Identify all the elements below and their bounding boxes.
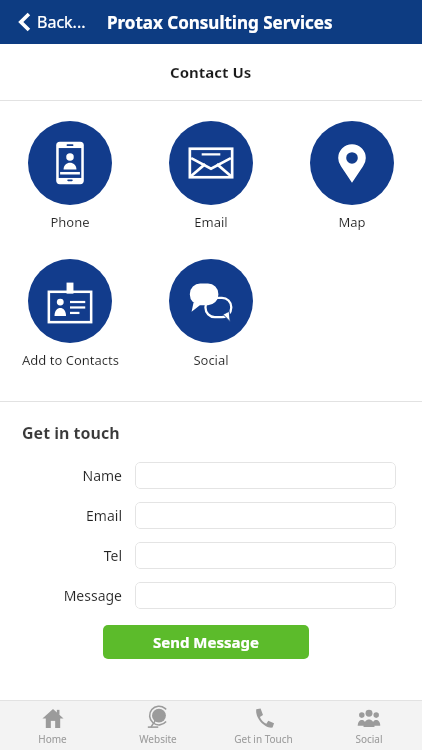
- button[interactable]: [135, 542, 396, 569]
- staticText: Phone: [50, 213, 90, 231]
- button[interactable]: Email: [140, 121, 281, 231]
- button[interactable]: Send Message: [103, 625, 309, 659]
- button[interactable]: [135, 502, 396, 529]
- button[interactable]: Add to Contacts: [0, 259, 140, 369]
- button[interactable]: Phone: [0, 121, 140, 231]
- staticText: Message: [63, 586, 122, 605]
- button[interactable]: Social: [140, 259, 281, 369]
- staticText: Get in touch: [22, 422, 120, 444]
- staticText: Social: [193, 351, 229, 369]
- button[interactable]: [135, 462, 396, 489]
- button[interactable]: Home: [0, 701, 105, 746]
- button[interactable]: Social: [316, 701, 422, 746]
- staticText: Contact Us: [170, 62, 252, 82]
- staticText: Back...: [37, 11, 86, 33]
- button[interactable]: [135, 582, 396, 609]
- staticText: Website: [139, 732, 177, 746]
- staticText: Social: [355, 732, 383, 746]
- staticText: Name: [82, 466, 122, 485]
- staticText: Add to Contacts: [22, 351, 119, 369]
- button[interactable]: Get in Touch: [210, 701, 316, 746]
- staticText: Home: [38, 732, 67, 746]
- button[interactable]: Map: [281, 121, 422, 231]
- staticText: Send Message: [153, 632, 259, 652]
- button[interactable]: Website: [105, 701, 210, 746]
- staticText: Map: [338, 213, 366, 231]
- staticText: Email: [194, 213, 228, 231]
- staticText: Protax Consulting Services: [107, 11, 333, 34]
- staticText: Get in Touch: [234, 732, 293, 746]
- staticText: Email: [86, 506, 122, 525]
- staticText: Tel: [103, 546, 122, 565]
- button[interactable]: Back...: [14, 7, 90, 37]
